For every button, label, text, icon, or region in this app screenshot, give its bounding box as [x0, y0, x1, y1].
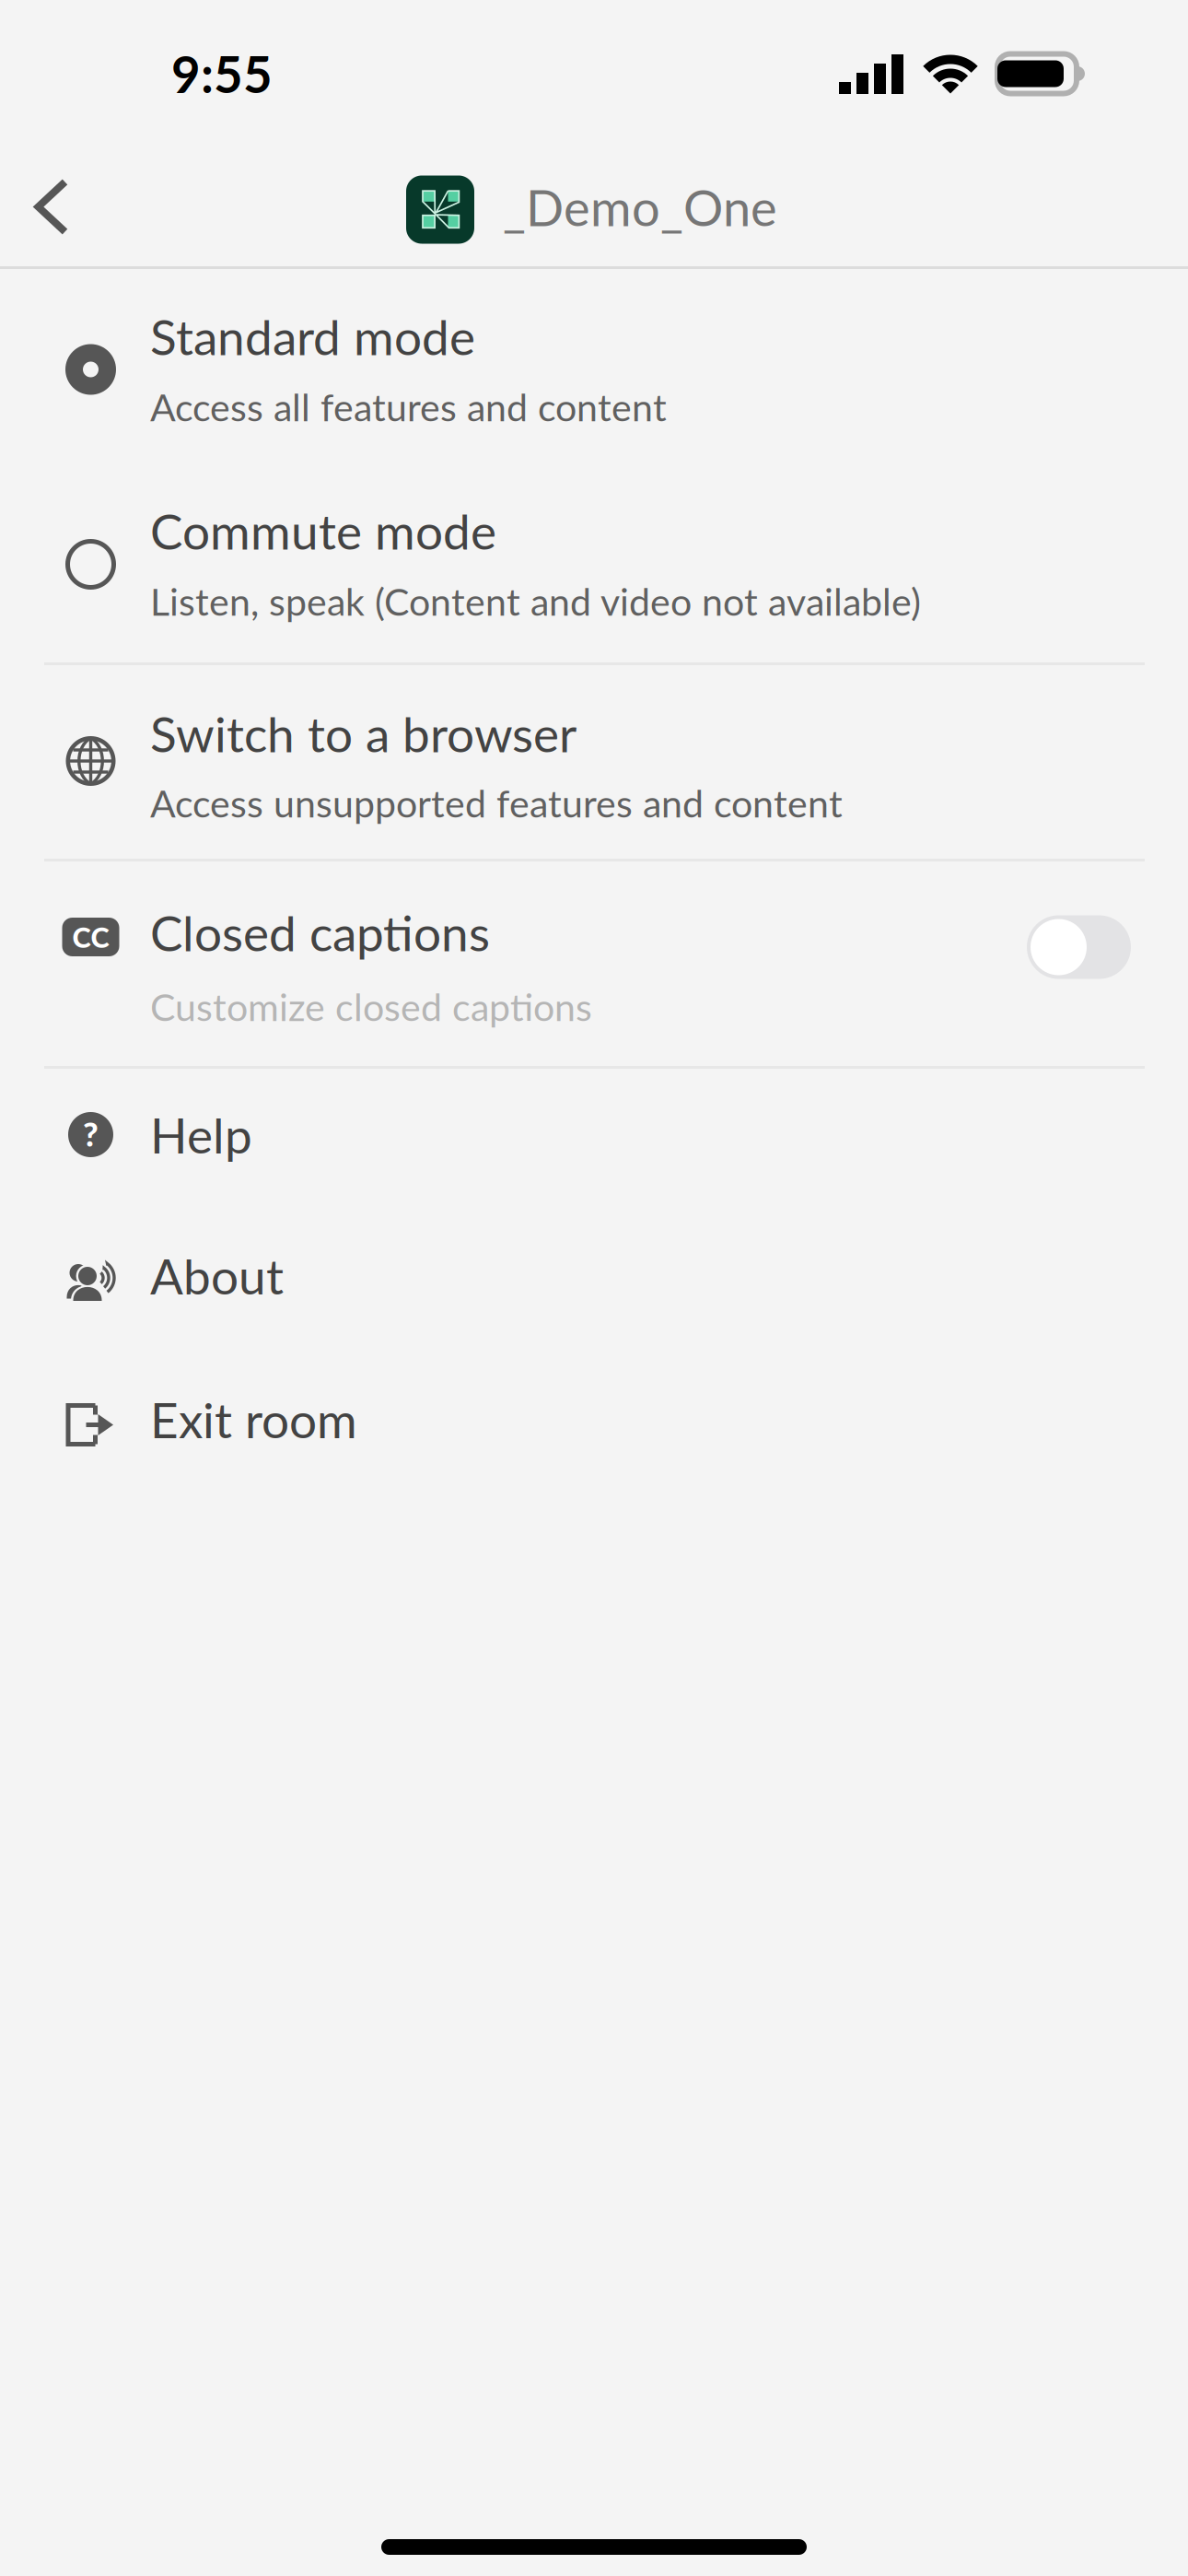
staticText: Switch to a browser: [150, 704, 577, 763]
button[interactable]: Back: [0, 147, 103, 266]
button[interactable]: Exit room: [0, 1354, 1188, 1497]
staticText: 9:55: [171, 44, 273, 104]
staticText: CC: [72, 920, 109, 954]
button[interactable]: About: [0, 1212, 1188, 1354]
staticText: Customize closed captions: [150, 984, 592, 1029]
staticText: Commute mode: [150, 501, 496, 560]
staticText: ?: [83, 1114, 99, 1154]
staticText: _Demo_One: [503, 177, 777, 237]
staticText: Access all features and content: [150, 384, 667, 429]
button[interactable]: Standard mode: [0, 269, 1188, 466]
button[interactable]: CC: [0, 861, 1188, 1066]
button[interactable]: Commute mode: [0, 466, 1188, 662]
staticText: Help: [150, 1105, 252, 1164]
staticText: Access unsupported features and content: [150, 780, 843, 825]
staticText: Exit room: [150, 1390, 357, 1449]
staticText: Standard mode: [150, 307, 475, 365]
staticText: About: [150, 1246, 284, 1305]
staticText: Listen, speak (Content and video not ava…: [150, 578, 921, 624]
staticText: Closed captions: [150, 903, 490, 962]
button[interactable]: ?: [0, 1069, 1188, 1212]
button[interactable]: Switch to a browser: [0, 665, 1188, 859]
